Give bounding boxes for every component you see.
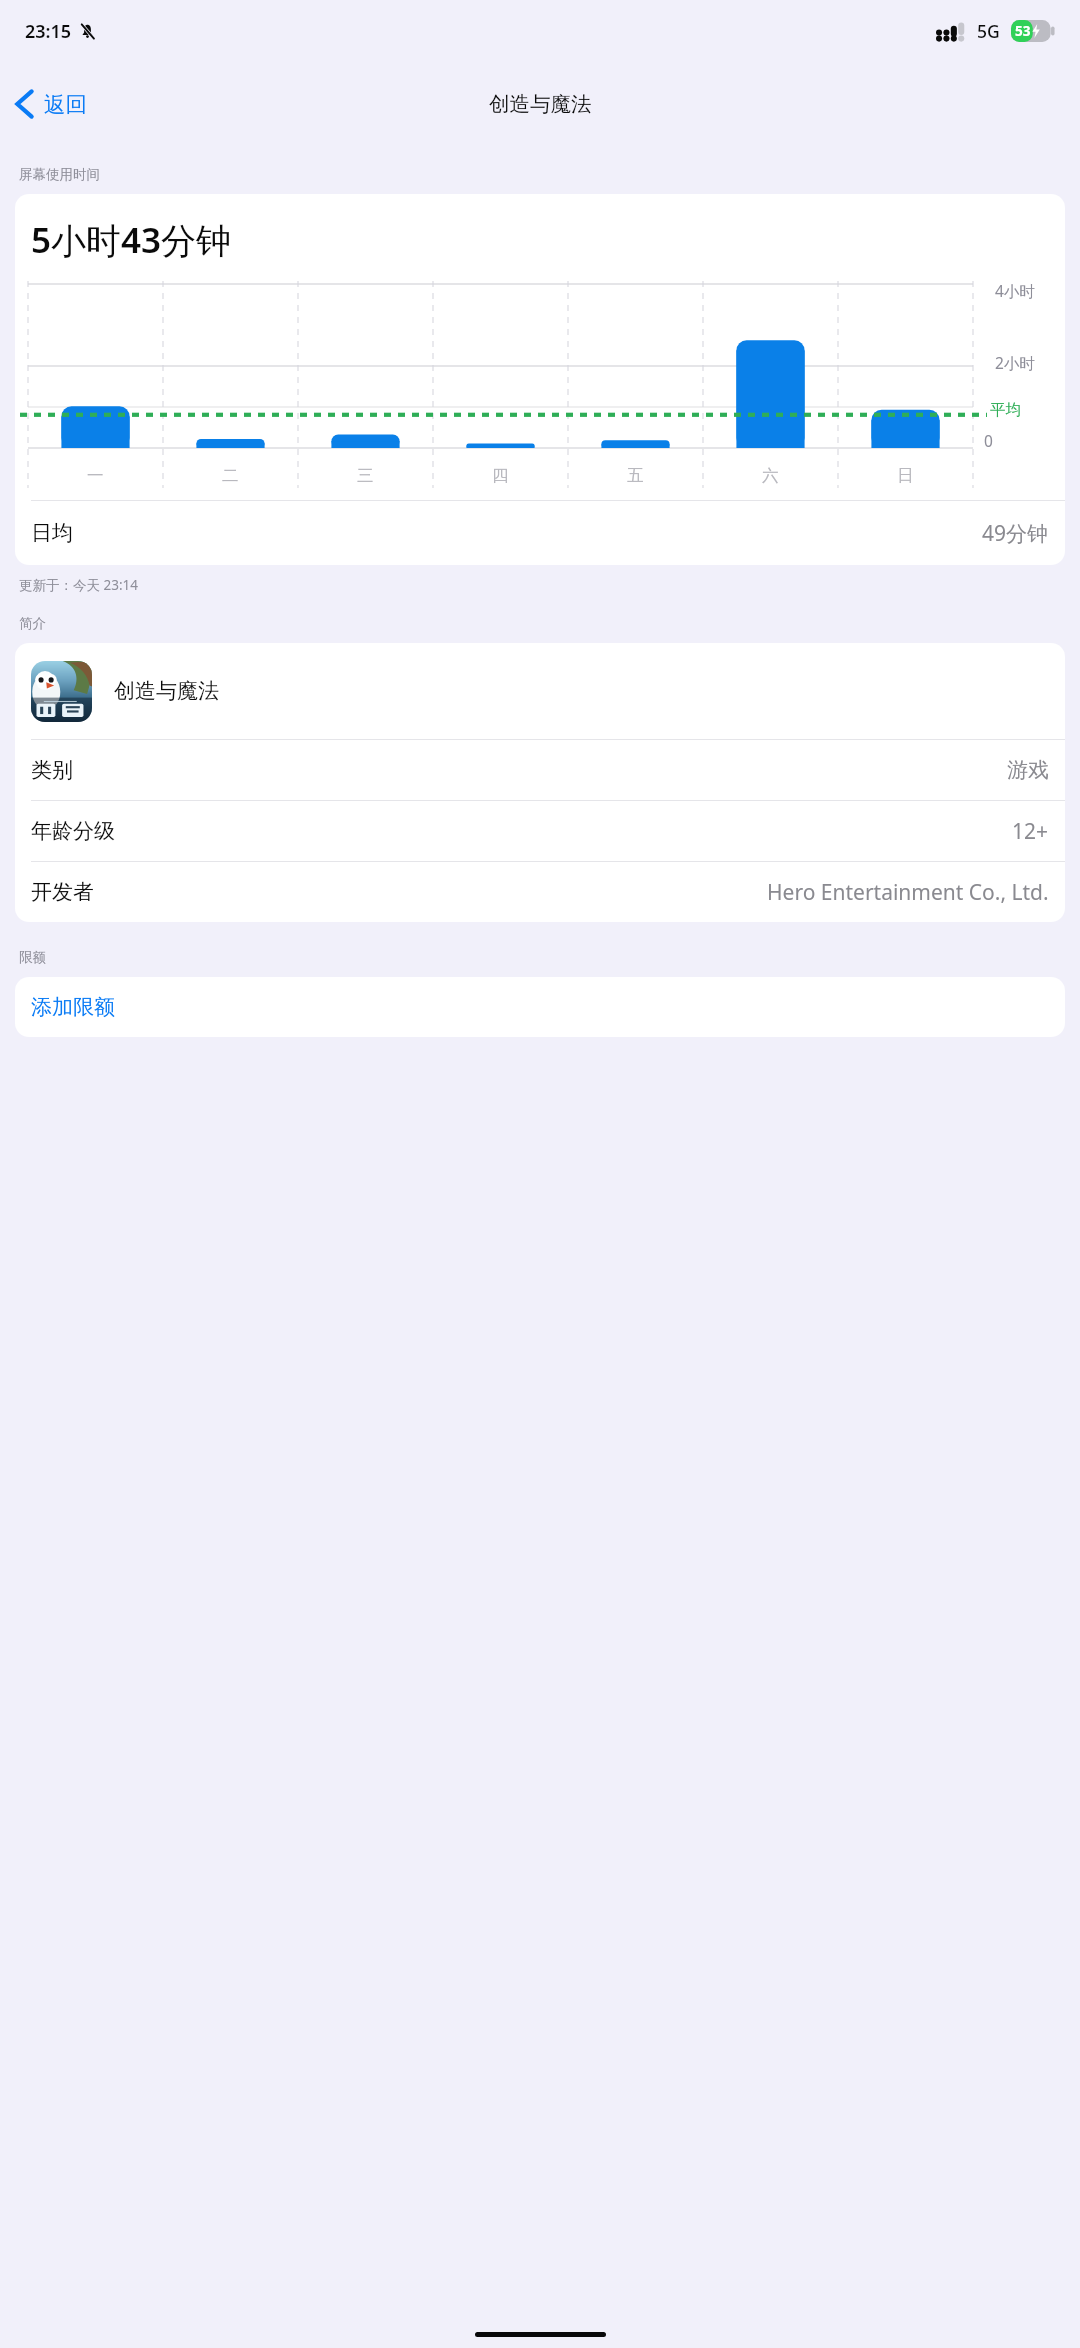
staticText: 类别 (31, 757, 73, 783)
staticText: 三 (357, 465, 374, 486)
staticText: 开发者 (31, 879, 94, 905)
staticText: 年龄分级 (31, 818, 115, 844)
staticText: 添加限额 (31, 994, 115, 1020)
button[interactable]: 创造与魔法 (15, 643, 1065, 739)
staticText: 创造与魔法 (114, 678, 219, 704)
staticText: 5小时43分钟 (31, 216, 232, 264)
staticText: 更新于：今天 23:14 (19, 576, 139, 594)
staticText: 2小时 (995, 352, 1035, 373)
staticText: 游戏 (1007, 757, 1049, 783)
staticText: 五 (627, 465, 644, 486)
button[interactable]: 开发者 (15, 862, 1065, 922)
button[interactable]: 日均 (15, 501, 1065, 565)
button[interactable]: 返回 (0, 79, 101, 129)
staticText: 一 (87, 465, 104, 486)
staticText: 49分钟 (982, 519, 1049, 548)
staticText: 创造与魔法 (489, 91, 592, 117)
other: 创造与魔法 (31, 661, 92, 722)
button[interactable]: 年龄分级 (15, 801, 1065, 861)
staticText: 限额 (19, 949, 46, 966)
staticText: 简介 (19, 615, 46, 632)
staticText: 53 (1015, 22, 1031, 40)
button[interactable]: 类别 (15, 740, 1065, 800)
staticText: 23:15 (25, 19, 72, 44)
staticText: 5G (977, 19, 1000, 43)
button[interactable]: 添加限额 (15, 977, 1065, 1037)
staticText: 0 (984, 430, 993, 451)
staticText: 屏幕使用时间 (19, 166, 100, 183)
staticText: 六 (762, 465, 779, 486)
staticText: Hero Entertainment Co., Ltd. (767, 878, 1049, 907)
staticText: 二 (222, 465, 239, 486)
staticText: 四 (492, 465, 509, 486)
staticText: 12+ (1012, 817, 1049, 846)
staticText: 日 (897, 465, 914, 486)
staticText: 4小时 (995, 280, 1035, 301)
staticText: 返回 (44, 91, 87, 118)
staticText: 平均 (990, 400, 1021, 420)
staticText: 日均 (31, 520, 73, 546)
